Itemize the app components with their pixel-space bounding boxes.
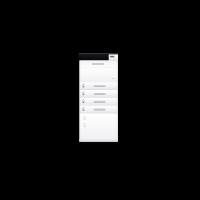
button[interactable]: Multifunction printer product photo bbox=[0, 0, 200, 200]
